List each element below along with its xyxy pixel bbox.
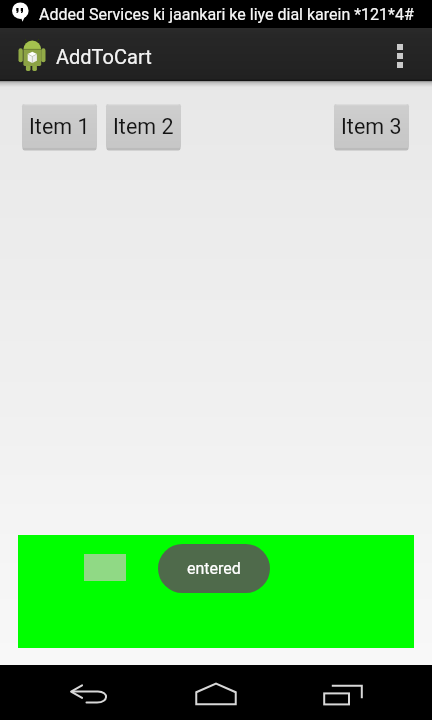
staticText: AddToCart xyxy=(56,45,152,68)
staticText: Added Services ki jaankari ke liye dial … xyxy=(39,5,414,24)
button[interactable]: More options xyxy=(377,28,423,81)
staticText: Item 2 xyxy=(113,114,174,139)
button[interactable]: Item 1 xyxy=(22,104,97,150)
staticText: Item 1 xyxy=(29,114,90,139)
staticText: entered xyxy=(187,559,241,578)
button[interactable]: Item 2 xyxy=(106,104,181,150)
button[interactable]: Back xyxy=(48,665,132,720)
button[interactable]: Item 3 xyxy=(334,104,409,150)
button[interactable]: entered xyxy=(158,544,270,593)
staticText: Item 3 xyxy=(341,114,402,139)
button[interactable]: Home xyxy=(174,665,258,720)
button[interactable]: Recent apps xyxy=(301,665,385,720)
